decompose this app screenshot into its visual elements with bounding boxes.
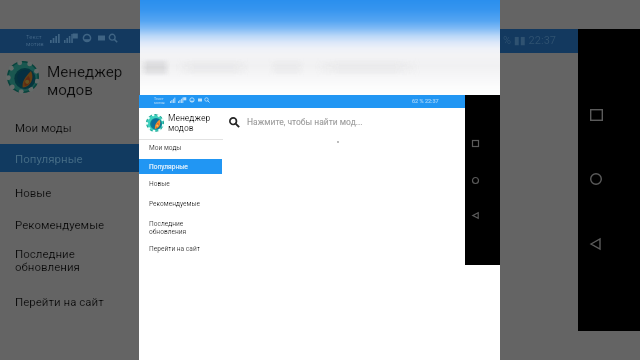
staticText: Текст	[154, 97, 164, 101]
staticText: Текст	[26, 33, 42, 40]
button[interactable]: Рекомендуемые	[139, 196, 222, 211]
staticText: Новые	[149, 180, 170, 188]
staticText: Менеджер	[168, 113, 211, 123]
staticText: Перейти на сайт	[149, 245, 200, 253]
button[interactable]: Последние	[139, 217, 222, 238]
staticText: обновления	[15, 260, 80, 273]
staticText: модов	[168, 123, 194, 133]
button[interactable]: Back	[580, 232, 608, 256]
staticText: Рекомендуемые	[15, 218, 105, 231]
staticText: % ▮▮ 22:37	[503, 34, 557, 47]
button[interactable]: Recents	[468, 136, 483, 151]
staticText: Мои моды	[149, 144, 182, 152]
button[interactable]: Home	[580, 167, 608, 191]
staticText: Рекомендуемые	[149, 200, 201, 208]
staticText: мотив	[26, 40, 44, 47]
staticText: Последние	[149, 220, 184, 228]
button[interactable]: Recents	[580, 97, 608, 121]
staticText: Популярные	[15, 152, 83, 165]
staticText: Мои моды	[15, 121, 72, 134]
button[interactable]: Популярные	[0, 144, 140, 172]
button[interactable]: Search	[226, 112, 416, 132]
button[interactable]: Рекомендуемые	[0, 210, 140, 238]
staticText: Перейти на сайт	[15, 295, 104, 308]
button[interactable]: Популярные	[139, 159, 222, 174]
staticText: модов	[47, 81, 93, 99]
button[interactable]: Back	[468, 208, 483, 223]
other: System navigation bar	[465, 95, 500, 265]
staticText: 62 % 22:37	[412, 98, 439, 104]
staticText: Новые	[15, 186, 52, 199]
button[interactable]: Мои моды	[139, 140, 222, 155]
button[interactable]: Home	[468, 173, 483, 188]
button[interactable]: Мои моды	[0, 113, 140, 141]
button[interactable]: Новые	[139, 176, 222, 191]
staticText: Менеджер	[47, 63, 123, 81]
button[interactable]: Последние	[0, 240, 140, 280]
staticText: Последние	[15, 247, 75, 260]
other: System navigation bar	[578, 29, 640, 331]
other: Search	[229, 117, 240, 128]
button[interactable]: Новые	[0, 178, 140, 206]
staticText: мотив	[154, 101, 165, 105]
staticText: Популярные	[149, 163, 188, 171]
button[interactable]: Перейти на сайт	[0, 287, 140, 315]
staticText: обновления	[149, 228, 187, 236]
staticText: Нажмите, чтобы найти мод...	[247, 117, 363, 127]
button[interactable]: Перейти на сайт	[139, 241, 222, 256]
